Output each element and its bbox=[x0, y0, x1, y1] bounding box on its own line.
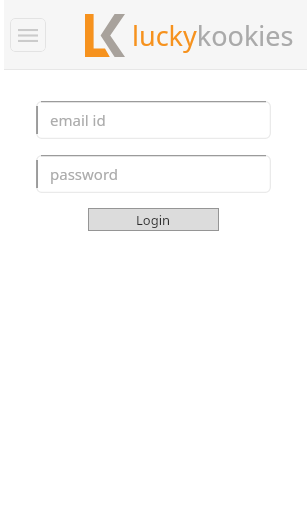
staticText: email id bbox=[50, 110, 106, 130]
button[interactable]: Login bbox=[88, 208, 219, 231]
staticText: Login bbox=[136, 211, 171, 229]
staticText: password bbox=[50, 164, 118, 184]
button[interactable]: email id bbox=[36, 101, 271, 139]
button[interactable]: password bbox=[36, 155, 271, 193]
button[interactable]: Menu bbox=[10, 18, 46, 52]
staticText: luckykookies bbox=[132, 17, 294, 54]
